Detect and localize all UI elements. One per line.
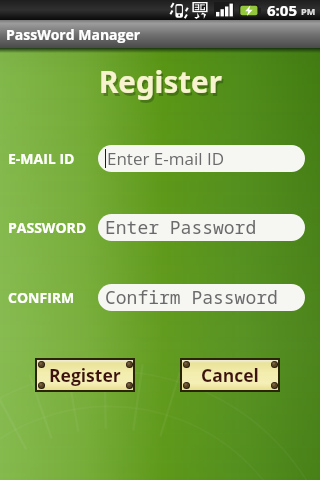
other: Battery charging	[239, 4, 261, 17]
staticText: Register	[49, 363, 121, 387]
other: Signal strength	[214, 2, 234, 18]
staticText: Enter Password	[105, 215, 257, 240]
staticText: Confirm Password	[105, 285, 278, 310]
other: 3G network	[192, 2, 211, 19]
staticText: PM	[301, 5, 316, 17]
button[interactable]: Register	[35, 358, 135, 392]
button[interactable]: Confirm Password	[98, 284, 305, 311]
staticText: PassWord Manager	[6, 25, 141, 44]
button[interactable]: Enter Password	[98, 214, 305, 241]
button[interactable]: Enter E-mail ID	[98, 145, 305, 172]
staticText: 6:05	[267, 0, 298, 20]
staticText: PASSWORD	[8, 218, 87, 237]
staticText: E-MAIL ID	[8, 149, 75, 168]
staticText: CONFIRM	[8, 288, 75, 307]
staticText: Register	[101, 64, 224, 104]
button[interactable]: Cancel	[180, 358, 280, 392]
staticText: Enter E-mail ID	[107, 147, 225, 170]
staticText: Cancel	[201, 363, 259, 387]
staticText: Register	[99, 61, 222, 101]
other: Vibrate	[170, 2, 188, 19]
